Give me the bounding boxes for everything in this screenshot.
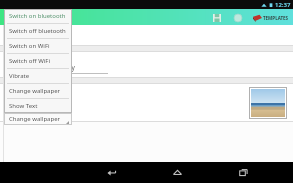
button[interactable]: Recent apps	[226, 162, 260, 183]
staticText: Switch off WiFi	[9, 57, 50, 65]
button[interactable]: TEMPLATES	[252, 14, 290, 22]
button[interactable]: Switch on bluetooth	[4, 9, 72, 23]
staticText: Switch off bluetooth	[9, 27, 66, 35]
staticText: Show Text	[9, 102, 38, 110]
staticText: TEMPLATES	[263, 15, 289, 21]
button[interactable]: Switch off bluetooth	[4, 24, 72, 38]
staticText: happy	[56, 63, 75, 72]
button[interactable]: Vibrate	[4, 69, 72, 83]
button[interactable]	[0, 25, 293, 45]
button[interactable]: Switch on WiFi	[4, 39, 72, 53]
button[interactable]: Show Text	[4, 99, 72, 113]
staticText: 12:37	[275, 1, 291, 9]
staticText: Change wallpaper	[9, 87, 60, 95]
staticText: Change wallpaper	[9, 115, 60, 123]
button[interactable]: Change wallpaper	[4, 84, 72, 98]
button[interactable]: Switch off WiFi	[4, 54, 72, 68]
button[interactable]: Save	[210, 11, 223, 24]
button[interactable]: Wallpaper preview	[251, 89, 285, 117]
staticText: Switch on bluetooth	[9, 12, 66, 20]
button[interactable]: Home	[160, 162, 194, 183]
staticText: Vibrate	[9, 72, 30, 80]
button[interactable]: Back	[94, 162, 128, 183]
staticText: Switch on WiFi	[9, 42, 50, 50]
button[interactable]: Options	[231, 11, 244, 24]
button[interactable]: Change wallpaper	[4, 113, 72, 125]
button[interactable]: happy	[0, 52, 293, 77]
